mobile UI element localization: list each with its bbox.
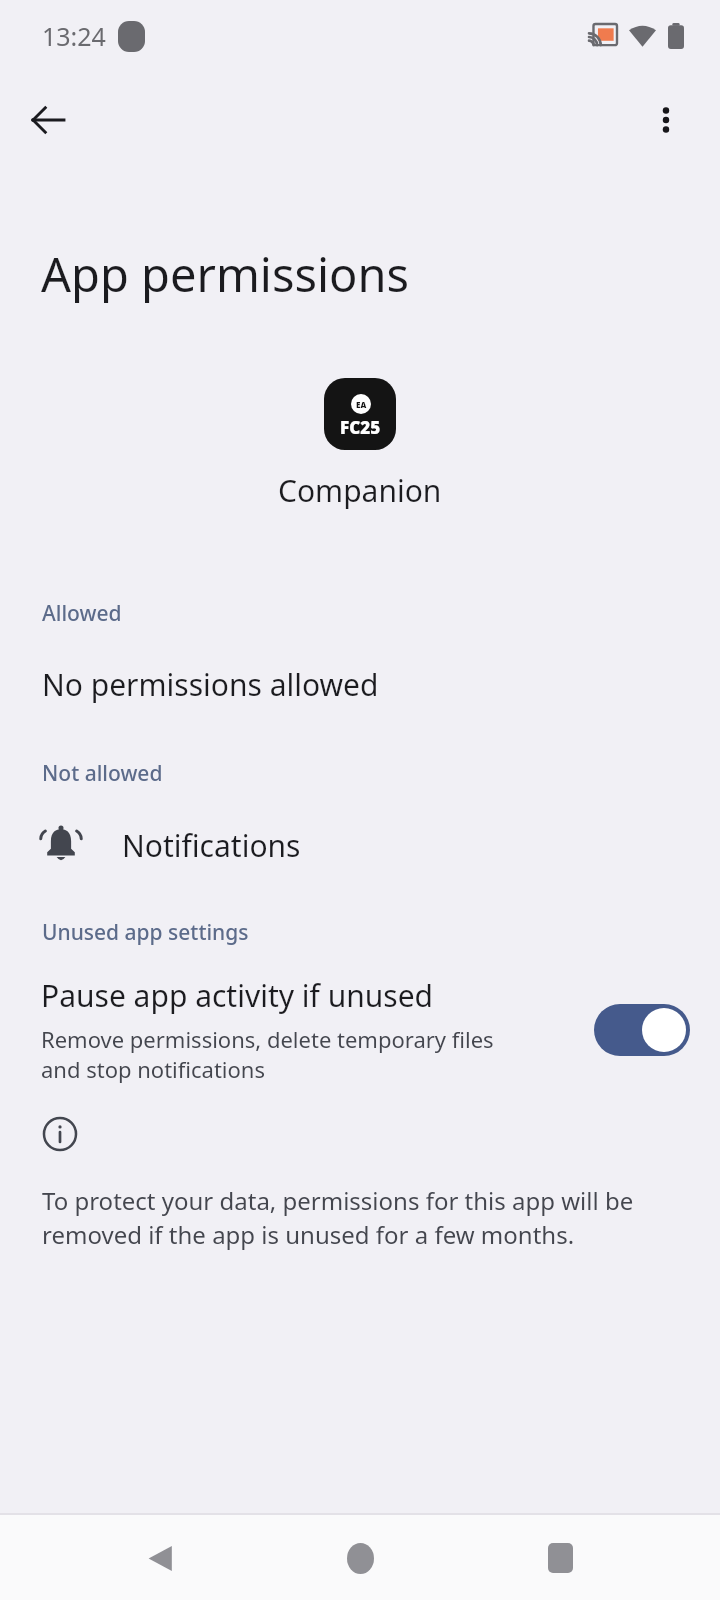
staticText: Remove permissions, delete temporary fil…	[41, 1024, 494, 1084]
staticText: Pause app activity if unused	[41, 975, 434, 1016]
button[interactable]: Home	[320, 1518, 400, 1598]
staticText: Notifications	[122, 825, 301, 866]
staticText: FC25	[340, 416, 381, 439]
staticText: Unused app settings	[42, 918, 249, 947]
staticText: App permissions	[41, 242, 410, 306]
staticText: Not allowed	[42, 759, 163, 788]
button[interactable]: Pause app activity toggle	[594, 1004, 690, 1056]
button[interactable]: Back	[120, 1518, 200, 1598]
button[interactable]: Pause app activity if unused	[0, 969, 720, 1090]
staticText: 13:24	[42, 19, 106, 53]
staticText: To protect your data, permissions for th…	[42, 1184, 634, 1251]
button[interactable]: Recent apps	[520, 1518, 600, 1598]
staticText: No permissions allowed	[42, 664, 379, 705]
button[interactable]: No permissions allowed	[0, 658, 720, 711]
staticText: EA	[356, 399, 367, 410]
staticText: Companion	[278, 470, 442, 511]
staticText: Allowed	[42, 599, 122, 628]
button[interactable]: Back	[14, 86, 82, 154]
button[interactable]: More options	[632, 86, 700, 154]
button[interactable]: Notifications	[0, 816, 720, 874]
